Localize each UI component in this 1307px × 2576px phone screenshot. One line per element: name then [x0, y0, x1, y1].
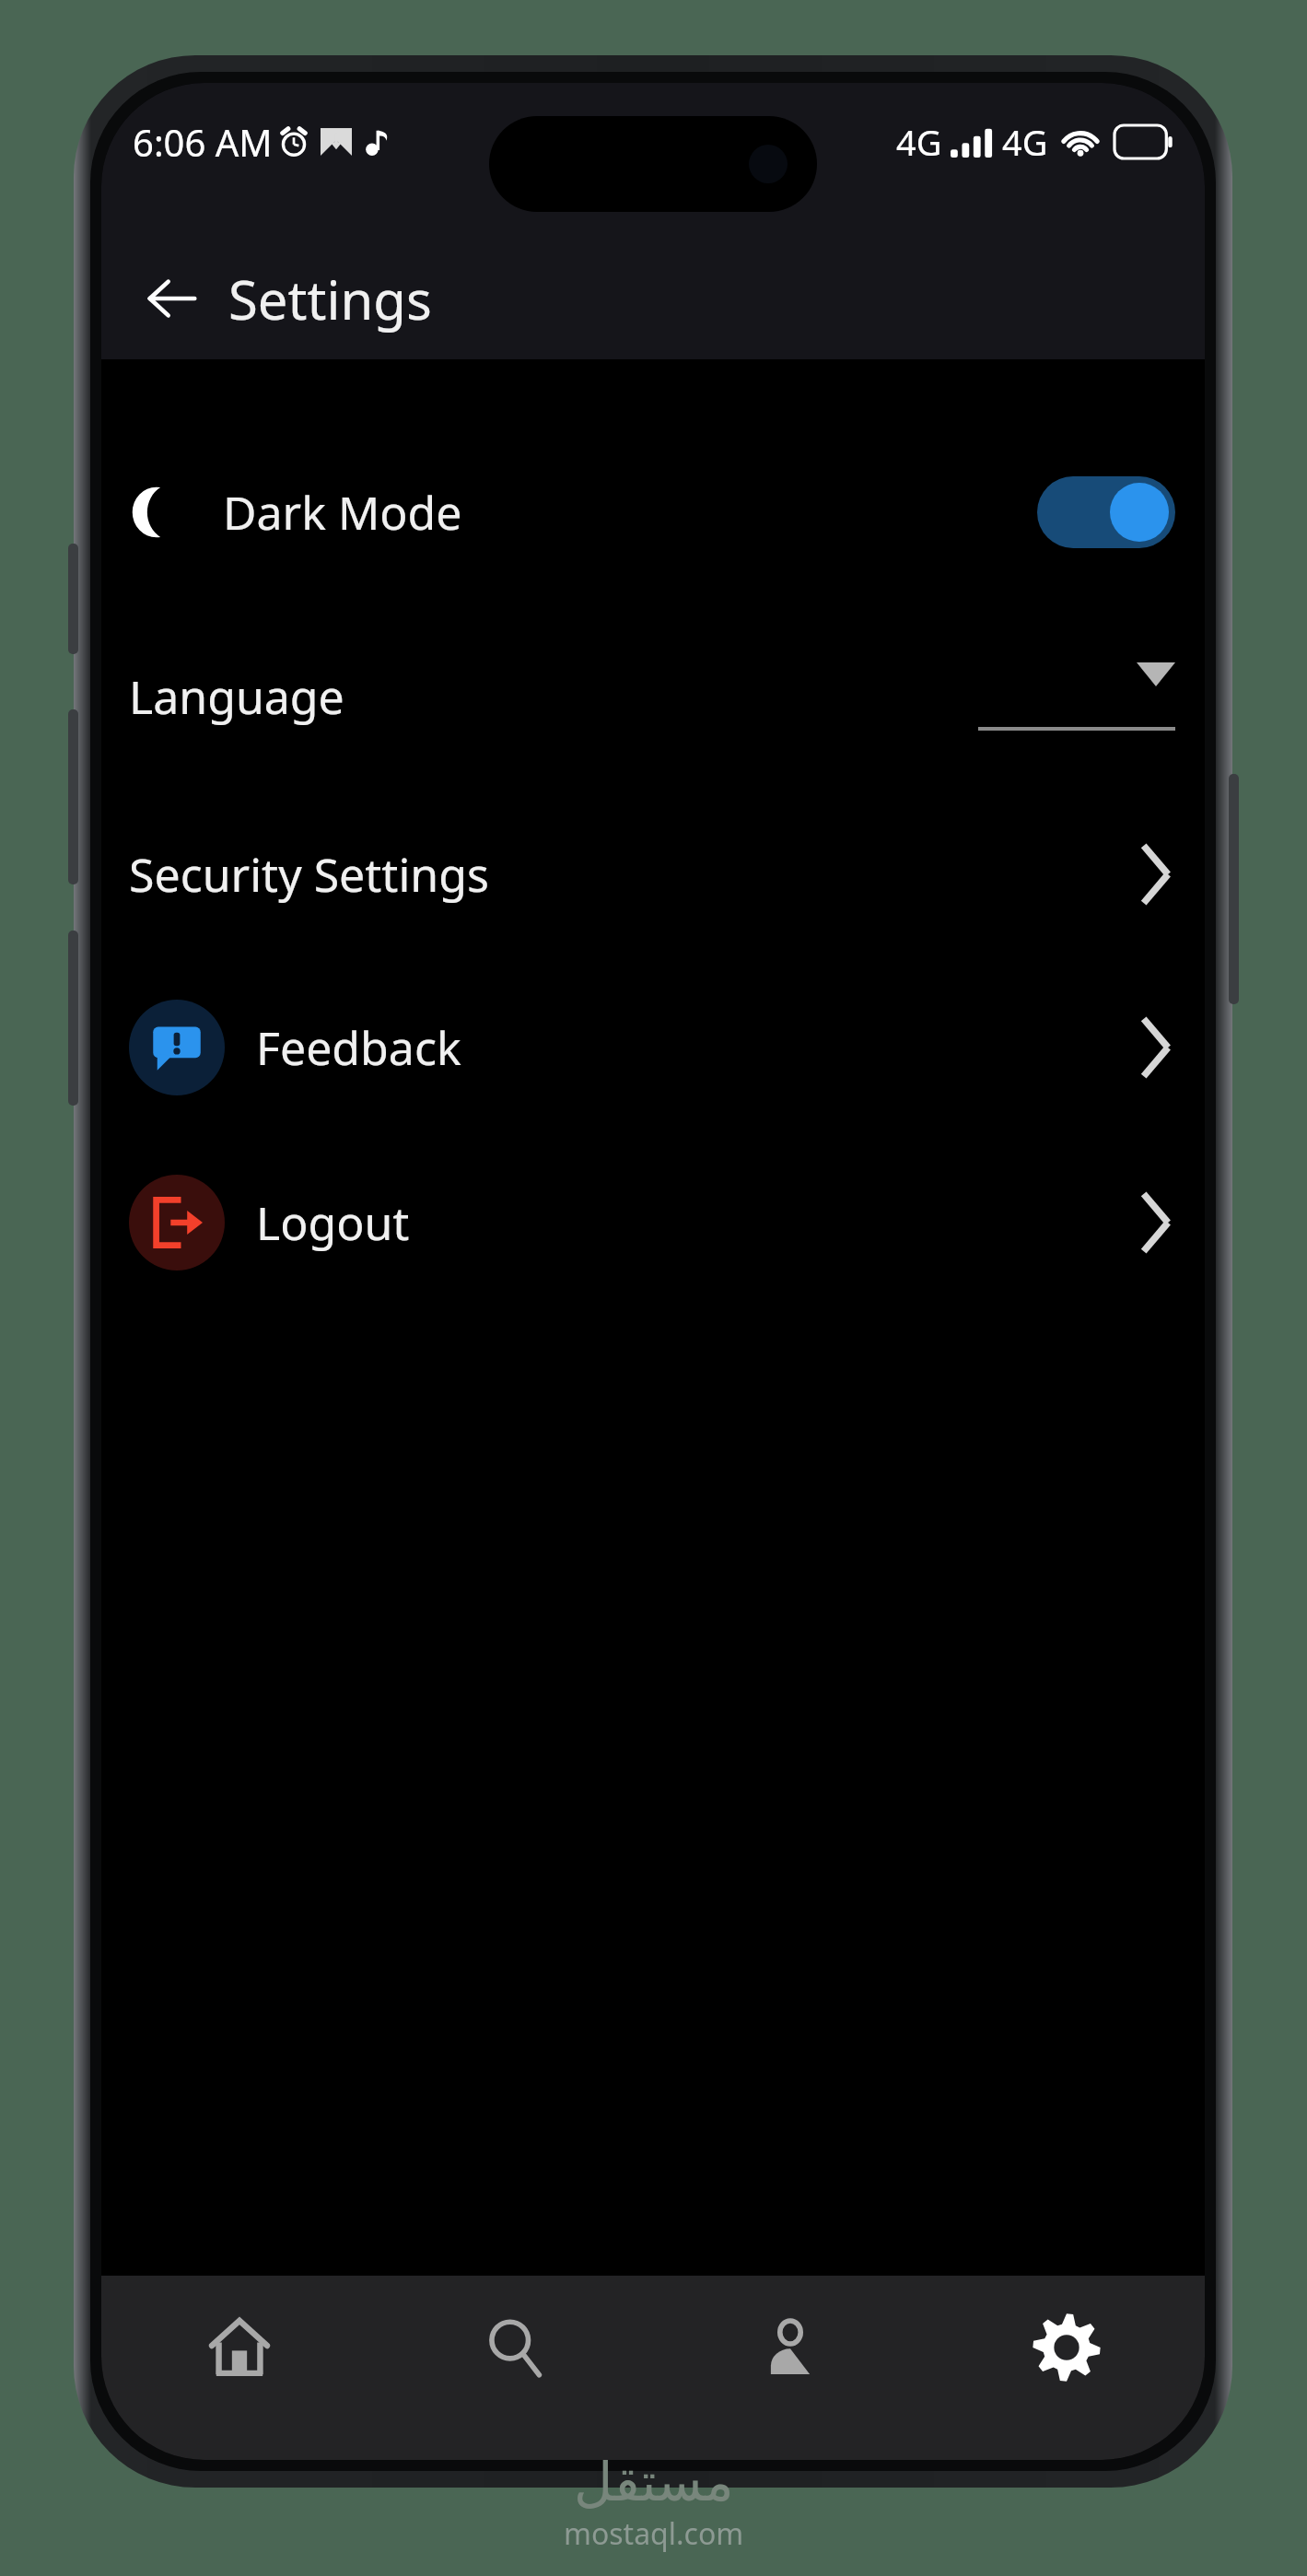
staticText: Security Settings: [129, 843, 489, 906]
staticText: 6:06 AM: [133, 117, 273, 167]
button[interactable]: Profile: [652, 2276, 928, 2419]
staticText: mostaql.com: [564, 2513, 744, 2554]
button[interactable]: Security Settings: [101, 807, 1205, 942]
staticText: 4G: [1002, 118, 1048, 166]
staticText: Settings: [228, 263, 432, 335]
button[interactable]: Dark Mode: [101, 444, 1205, 580]
button[interactable]: Back: [129, 255, 216, 342]
staticText: Dark Mode: [223, 481, 462, 544]
button[interactable]: Language: [101, 638, 1205, 755]
button[interactable]: Settings: [928, 2276, 1205, 2419]
staticText: 4G: [896, 118, 942, 166]
button[interactable]: Search: [377, 2276, 652, 2419]
button[interactable]: Logout: [101, 1155, 1205, 1290]
staticText: Language: [129, 665, 344, 728]
button[interactable]: Home: [101, 2276, 377, 2419]
button[interactable]: Dark Mode toggle: [1037, 476, 1175, 548]
staticText: مستقل: [574, 2451, 734, 2513]
staticText: Feedback: [256, 1016, 461, 1079]
button[interactable]: Feedback: [101, 980, 1205, 1115]
staticText: Logout: [256, 1191, 410, 1254]
